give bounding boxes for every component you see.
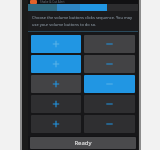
button[interactable]: Volume up <box>31 55 81 73</box>
button[interactable]: Volume down <box>84 35 135 53</box>
button[interactable]: Volume up <box>31 75 81 93</box>
button[interactable]: Volume up <box>31 115 81 133</box>
button[interactable]: Ready <box>30 137 136 149</box>
button[interactable]: Volume down <box>84 75 135 93</box>
button[interactable]: Volume down <box>84 55 135 73</box>
staticText: Choose the volume buttons clicks sequenc… <box>32 15 134 27</box>
button[interactable]: Volume down <box>84 95 135 113</box>
staticText: Ready <box>74 139 92 147</box>
staticText: Shake & Cut Alert <box>40 0 65 4</box>
button[interactable]: Volume up <box>31 95 81 113</box>
button[interactable]: Volume down <box>84 115 135 133</box>
button[interactable]: Volume up <box>31 35 81 53</box>
